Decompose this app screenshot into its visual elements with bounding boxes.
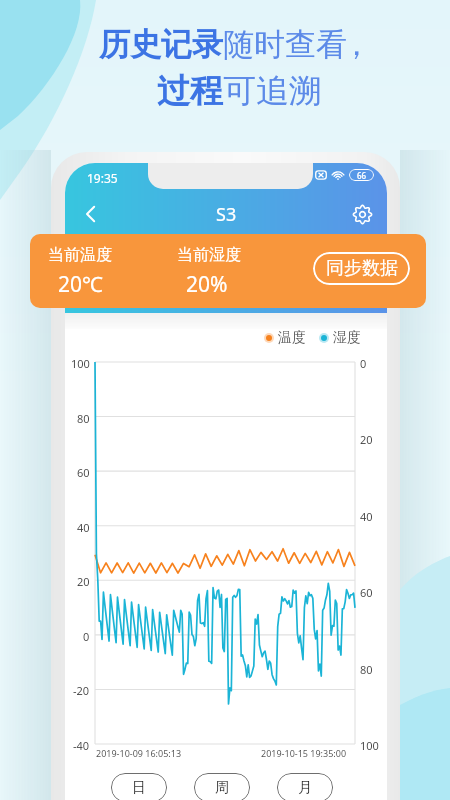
staticText: 过程 [157, 70, 223, 112]
staticText: 同步数据 [326, 257, 398, 280]
staticText: 月 [298, 779, 312, 797]
button[interactable]: 日 [111, 773, 167, 800]
staticText: 60 [360, 585, 373, 597]
staticText: 随时查看 [223, 25, 347, 64]
staticText: 当前温度 [48, 245, 112, 265]
staticText: 20% [186, 270, 228, 299]
button[interactable]: 月 [277, 773, 333, 800]
staticText: 20 [77, 574, 90, 586]
staticText: -40 [73, 738, 90, 750]
staticText: 19:35 [87, 170, 118, 186]
staticText: 60 [77, 465, 90, 477]
staticText: 0 [360, 356, 367, 368]
staticText: ， [347, 25, 366, 64]
button[interactable]: Back [73, 196, 109, 232]
staticText: 温度 [278, 329, 306, 347]
staticText: 0 [83, 629, 90, 641]
staticText: 20℃ [58, 270, 103, 299]
staticText: 20 [360, 432, 373, 444]
staticText: 当前湿度 [177, 245, 241, 265]
staticText: 66 [357, 170, 367, 181]
staticText: S3 [216, 202, 237, 227]
staticText: 历史记录 [99, 25, 223, 64]
staticText: 80 [77, 411, 90, 423]
staticText: 2019-10-15 19:35:00 [261, 747, 347, 759]
staticText: 100 [71, 356, 90, 368]
button[interactable]: 同步数据 [313, 252, 410, 285]
staticText: 日 [132, 779, 146, 797]
staticText: 湿度 [333, 329, 361, 347]
staticText: 可追溯 [223, 70, 322, 112]
staticText: 2019-10-09 16:05:13 [96, 747, 182, 759]
staticText: 40 [360, 509, 373, 521]
staticText: 80 [360, 662, 373, 674]
staticText: 100 [360, 738, 379, 750]
staticText: -20 [73, 683, 90, 695]
staticText: 周 [215, 779, 229, 797]
button[interactable]: 周 [194, 773, 250, 800]
button[interactable]: Settings [344, 196, 380, 232]
staticText: 40 [77, 520, 90, 532]
